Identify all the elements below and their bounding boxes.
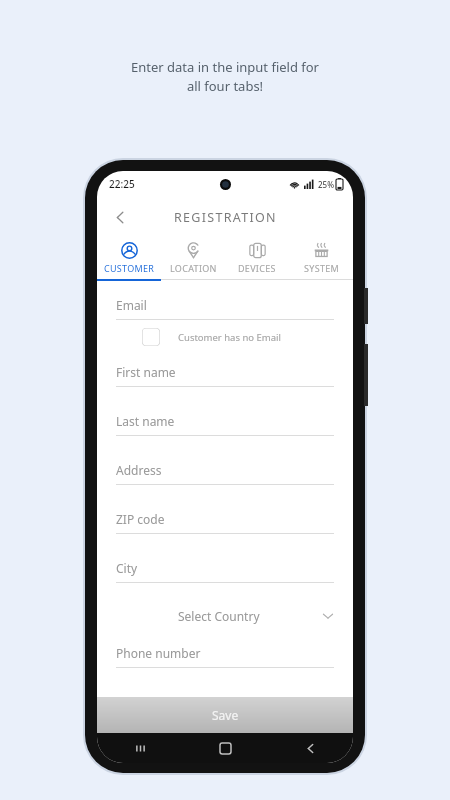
staticText: Enter data in the input field for all fo… <box>131 58 319 95</box>
staticText: City <box>116 560 138 576</box>
button[interactable]: LOCATION <box>161 237 225 279</box>
button[interactable]: Address <box>116 462 334 485</box>
staticText: Last name <box>116 413 175 429</box>
staticText: ZIP code <box>116 511 165 527</box>
button[interactable]: Phone number <box>116 645 334 668</box>
button[interactable]: First name <box>116 364 334 387</box>
staticText: LOCATION <box>170 262 217 274</box>
button[interactable]: Back <box>268 733 353 763</box>
button[interactable]: Last name <box>116 413 334 436</box>
staticText: REGISTRATION <box>174 209 277 226</box>
button[interactable]: City <box>116 560 334 583</box>
staticText: Select Country <box>178 608 260 624</box>
staticText: DEVICES <box>238 262 276 274</box>
staticText: CUSTOMER <box>104 262 155 274</box>
button[interactable]: Recent apps <box>97 733 183 763</box>
button[interactable]: Home <box>183 733 268 763</box>
button[interactable]: Customer has no Email <box>142 328 334 346</box>
button[interactable]: SYSTEM <box>289 237 353 279</box>
staticText: Address <box>116 462 162 478</box>
button[interactable]: Select Country <box>116 605 334 627</box>
staticText: Customer has no Email <box>178 331 281 344</box>
button[interactable]: Back <box>103 200 137 234</box>
button[interactable]: Email <box>116 297 334 320</box>
button[interactable]: DEVICES <box>225 237 289 279</box>
button[interactable]: ZIP code <box>116 511 334 534</box>
staticText: SYSTEM <box>304 262 339 274</box>
staticText: First name <box>116 364 176 380</box>
button[interactable]: CUSTOMER <box>97 237 161 279</box>
staticText: Save <box>212 707 239 723</box>
staticText: 25% <box>318 179 334 190</box>
staticText: Phone number <box>116 645 201 661</box>
staticText: 22:25 <box>109 177 135 191</box>
staticText: Email <box>116 297 147 313</box>
button[interactable]: Save <box>97 697 353 733</box>
